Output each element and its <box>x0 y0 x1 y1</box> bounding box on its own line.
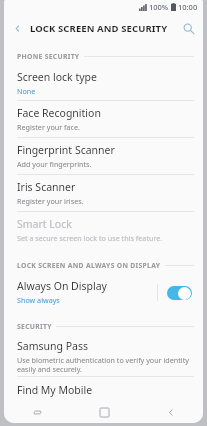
staticText: Register your face. <box>17 122 80 132</box>
staticText: Smart Lock <box>17 217 72 231</box>
button[interactable]: Screen lock type <box>4 66 203 100</box>
staticText: LOCK SCREEN AND SECURITY <box>30 22 168 35</box>
button[interactable]: Face Recognition <box>4 101 203 137</box>
staticText: PHONE SECURITY <box>17 52 80 61</box>
button[interactable]: Find My Mobile <box>4 377 203 402</box>
staticText: Set a secure screen lock to use this fea… <box>17 233 163 243</box>
button[interactable]: Recents <box>4 402 71 423</box>
staticText: 100% <box>149 2 169 12</box>
staticText: SECURITY <box>17 322 52 331</box>
staticText: Face Recognition <box>17 106 101 120</box>
staticText: None <box>17 86 36 96</box>
button[interactable]: Search <box>177 17 199 39</box>
staticText: Register your irises. <box>17 196 84 206</box>
button[interactable]: Fingerprint Scanner <box>4 138 203 174</box>
staticText: Use biometric authentication to verify y… <box>17 355 195 374</box>
button[interactable]: Samsung Pass <box>4 336 203 376</box>
staticText: Add your fingerprints. <box>17 159 92 169</box>
staticText: 10:00 <box>178 2 198 12</box>
button[interactable]: Smart Lock <box>4 212 203 248</box>
button[interactable]: Back <box>4 15 30 41</box>
staticText: Samsung Pass <box>17 339 88 353</box>
staticText: Find My Mobile <box>17 383 93 397</box>
button[interactable]: Always On Display <box>4 275 203 309</box>
button[interactable]: Always On Display toggle <box>167 286 192 300</box>
staticText: Show always <box>17 295 60 305</box>
staticText: Screen lock type <box>17 70 97 84</box>
staticText: LOCK SCREEN AND ALWAYS ON DISPLAY <box>17 261 161 270</box>
staticText: Fingerprint Scanner <box>17 143 115 157</box>
staticText: Iris Scanner <box>17 180 76 194</box>
button[interactable]: Back <box>137 402 203 423</box>
staticText: Always On Display <box>17 279 107 293</box>
button[interactable]: Home <box>71 402 137 423</box>
button[interactable]: Iris Scanner <box>4 175 203 211</box>
